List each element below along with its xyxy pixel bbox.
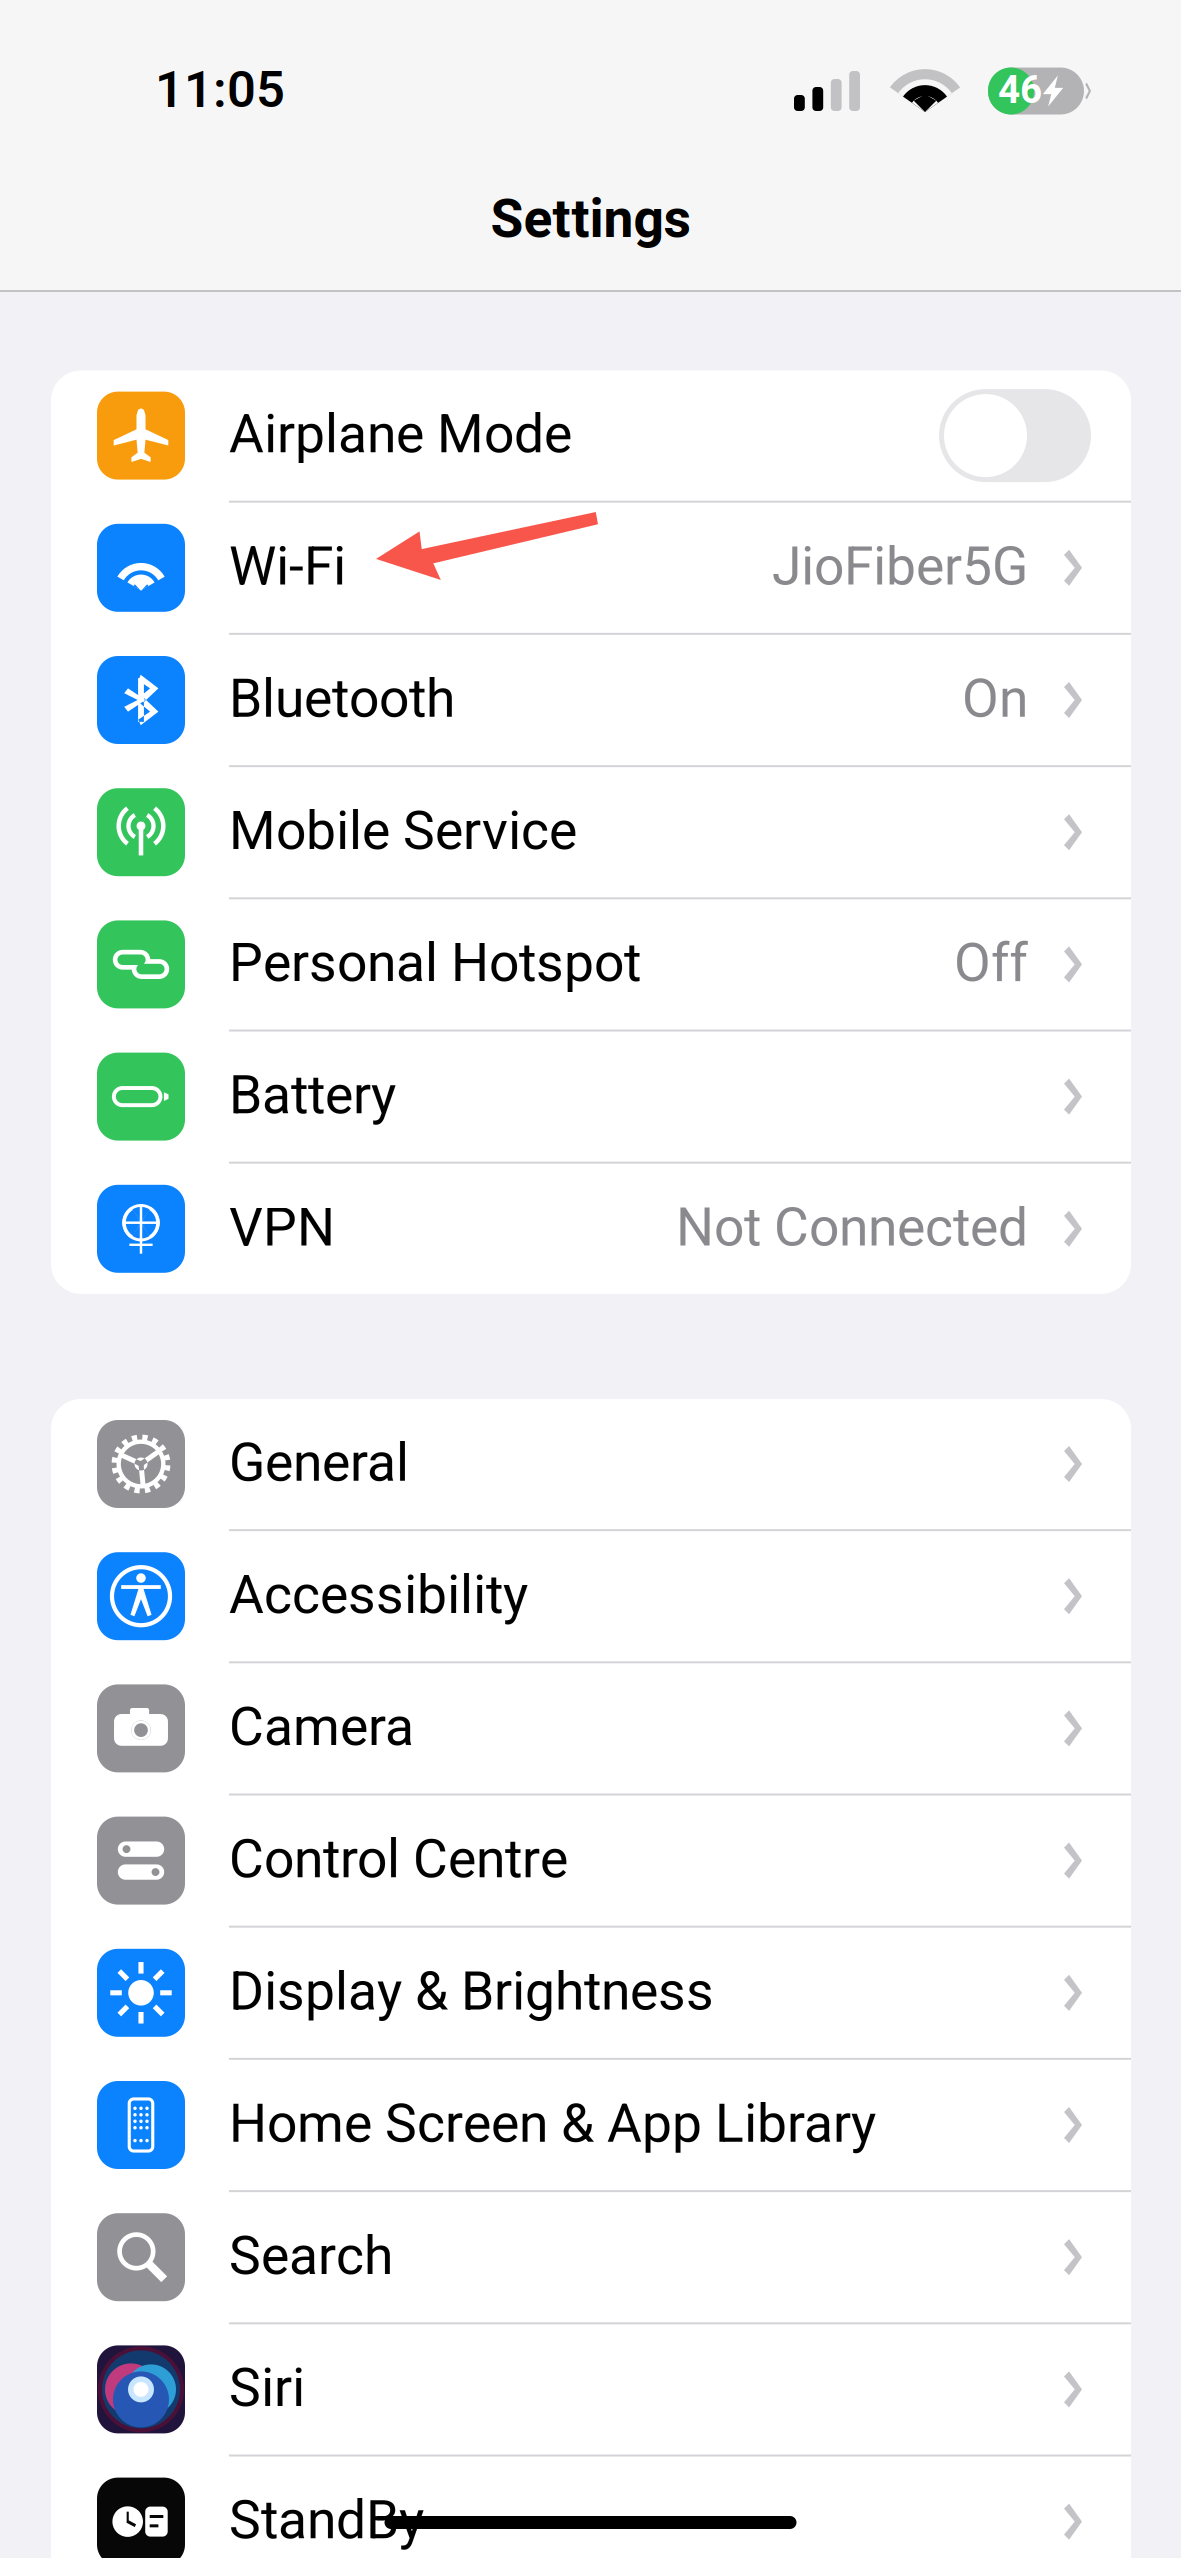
button[interactable]: Siri — [51, 2324, 1131, 2454]
staticText: Home Screen & App Library — [229, 2086, 876, 2164]
button[interactable]: Home Screen & App Library — [51, 2060, 1131, 2190]
staticText: JioFiber5G — [772, 529, 1028, 607]
staticText: Control Centre — [229, 1821, 568, 1900]
staticText: Off — [954, 925, 1028, 1003]
staticText: Camera — [229, 1689, 414, 1767]
button[interactable]: Accessibility — [51, 1531, 1131, 1661]
staticText: 46 — [998, 63, 1042, 119]
staticText: VPN — [229, 1190, 335, 1268]
button[interactable]: Camera — [51, 1663, 1131, 1793]
staticText: 11:05 — [155, 54, 285, 128]
button[interactable]: Control Centre — [51, 1795, 1131, 1926]
staticText: General — [229, 1425, 409, 1503]
button[interactable]: Airplane Mode — [939, 389, 1091, 482]
button[interactable]: StandBy — [51, 2456, 1131, 2558]
staticText: Wi-Fi — [229, 529, 346, 607]
staticText: Accessibility — [229, 1557, 528, 1635]
button[interactable]: Bluetooth — [51, 635, 1131, 765]
staticText: Display & Brightness — [229, 1954, 714, 2032]
button[interactable]: Display & Brightness — [51, 1928, 1131, 2058]
staticText: Mobile Service — [229, 793, 577, 871]
button[interactable]: Wi-Fi — [51, 503, 1131, 633]
staticText: Not Connected — [676, 1190, 1028, 1268]
staticText: Settings — [490, 181, 690, 259]
button[interactable]: Search — [51, 2192, 1131, 2322]
staticText: Search — [229, 2218, 393, 2296]
staticText: On — [962, 661, 1028, 739]
staticText: Bluetooth — [229, 661, 455, 739]
staticText: Battery — [229, 1057, 396, 1136]
staticText: Airplane Mode — [229, 396, 572, 475]
button[interactable]: Mobile Service — [51, 767, 1131, 897]
button[interactable]: VPN — [51, 1164, 1131, 1294]
staticText: Siri — [229, 2350, 305, 2428]
button[interactable]: Personal Hotspot — [51, 899, 1131, 1029]
button[interactable]: General — [51, 1399, 1131, 1529]
staticText: StandBy — [229, 2482, 424, 2558]
staticText: Personal Hotspot — [229, 925, 641, 1003]
button[interactable]: Battery — [51, 1031, 1131, 1162]
